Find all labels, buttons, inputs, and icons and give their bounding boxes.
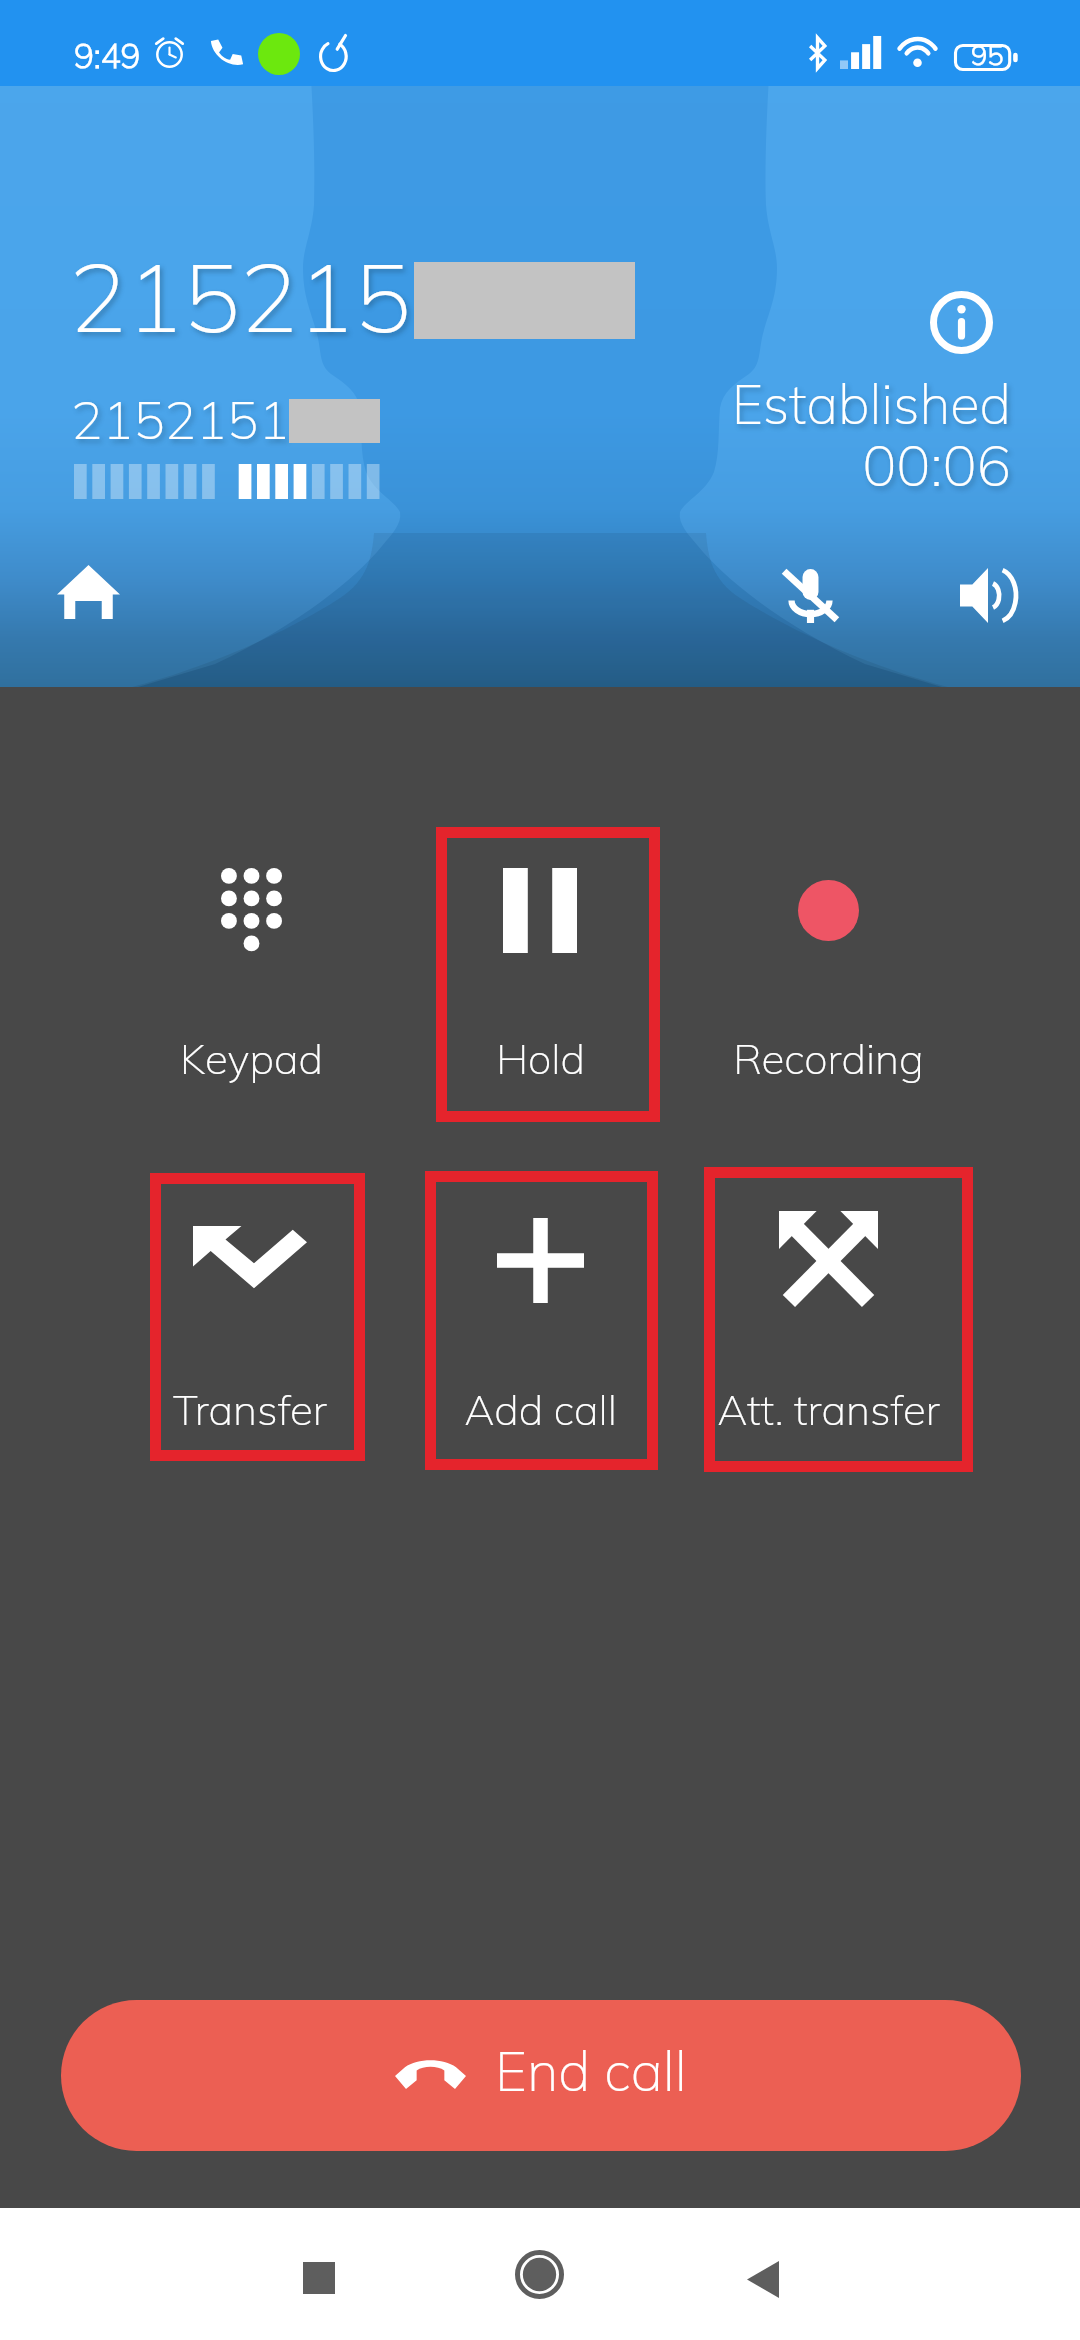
staticText: Att. transfer <box>717 1383 940 1436</box>
button[interactable]: Speaker <box>940 547 1036 643</box>
button[interactable] <box>716 827 940 1123</box>
button[interactable] <box>150 1173 365 1461</box>
staticText: Established <box>731 370 1011 438</box>
staticText: 00:06 <box>862 429 1011 501</box>
staticText: 215215 <box>69 237 412 356</box>
button[interactable] <box>148 827 372 1123</box>
staticText: Transfer <box>173 1383 327 1436</box>
staticText: Keypad <box>180 1032 323 1085</box>
staticText: End call <box>495 2036 687 2105</box>
button[interactable]: Mute microphone <box>762 547 858 643</box>
staticText: Add call <box>464 1383 617 1436</box>
button[interactable]: End call <box>61 2000 1021 2151</box>
button[interactable] <box>425 1171 658 1470</box>
staticText: 9:49 <box>74 35 141 76</box>
button[interactable] <box>704 1167 973 1472</box>
staticText: 2152151 <box>71 387 290 452</box>
button[interactable] <box>436 827 660 1122</box>
staticText: Recording <box>733 1032 924 1085</box>
staticText: Hold <box>496 1032 585 1085</box>
button[interactable]: Recent apps <box>269 2228 369 2328</box>
staticText: 95 <box>971 38 1004 72</box>
button[interactable]: Home <box>489 2224 589 2324</box>
button[interactable]: Home <box>40 544 136 640</box>
button[interactable]: Back <box>713 2229 813 2329</box>
button[interactable]: Call information <box>913 274 1009 370</box>
